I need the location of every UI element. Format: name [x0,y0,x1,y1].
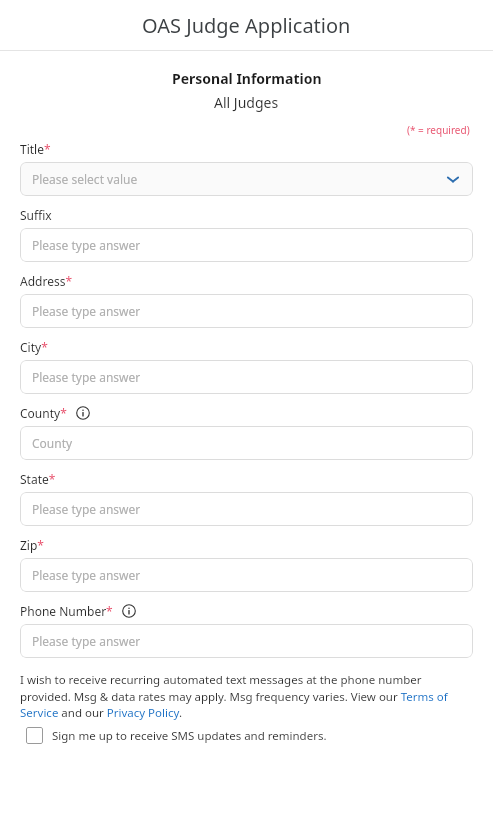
button[interactable]: Please type answer [20,624,473,658]
button[interactable]: Sign me up to receive SMS updates and re… [26,727,327,744]
staticText: County [32,435,73,451]
staticText: Please type answer [32,303,141,319]
staticText: I wish to receive recurring automated te… [20,672,473,720]
staticText: Zip* [20,537,44,553]
staticText: County* [20,405,67,421]
staticText: Address* [20,273,73,289]
button[interactable]: Please type answer [20,558,473,592]
button[interactable]: Please type answer [20,228,473,262]
staticText: (* = required) [407,123,470,137]
staticText: Sign me up to receive SMS updates and re… [52,728,327,744]
staticText: Personal Information [172,69,322,88]
staticText: Please type answer [32,567,141,583]
button[interactable]: Please type answer [20,360,473,394]
staticText: Please type answer [32,369,141,385]
staticText: City* [20,339,48,355]
button[interactable]: Please select value [20,162,473,196]
staticText: Please type answer [32,501,141,517]
button[interactable]: County [20,426,473,460]
staticText: State* [20,471,56,487]
button[interactable]: More information [76,406,90,420]
staticText: Please type answer [32,633,141,649]
staticText: Suffix [20,207,52,223]
staticText: Please select value [32,171,138,187]
staticText: OAS Judge Application [142,12,351,39]
button[interactable]: More information [122,604,136,618]
staticText: Title* [20,141,51,157]
staticText: All Judges [214,93,279,112]
staticText: Please type answer [32,237,141,253]
staticText: Phone Number* [20,603,113,619]
button[interactable]: Please type answer [20,294,473,328]
button[interactable]: Please type answer [20,492,473,526]
